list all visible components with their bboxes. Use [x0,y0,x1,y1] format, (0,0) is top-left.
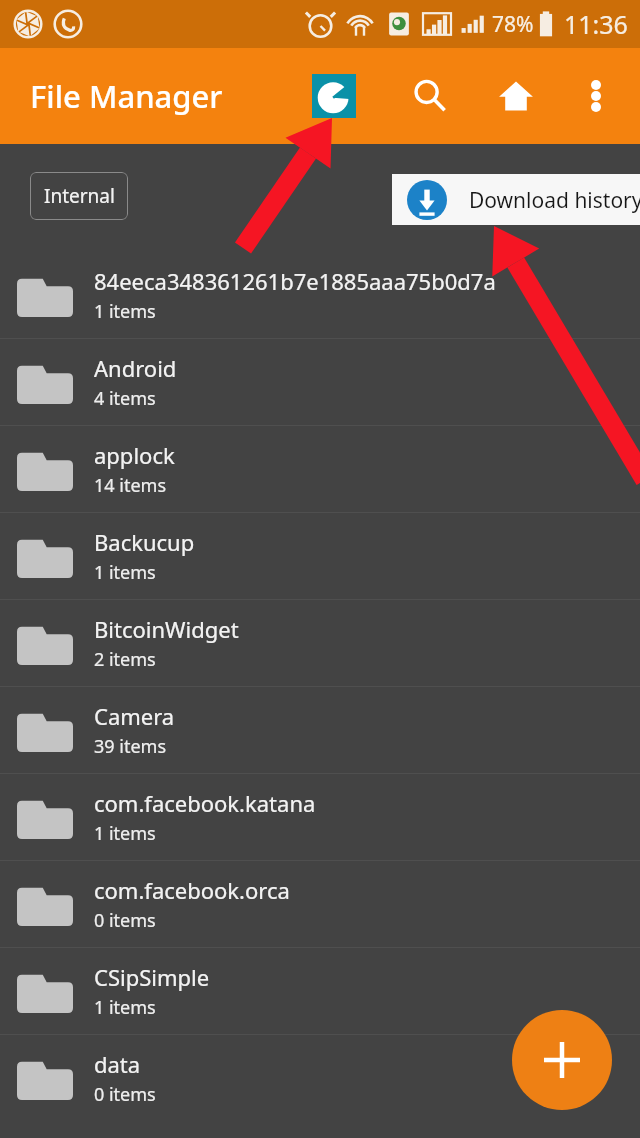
staticText: 4 items [94,386,156,411]
staticText: 39 items [94,734,167,759]
staticText: CSipSimple [94,962,210,992]
button[interactable]: com.facebook.orca [0,861,640,947]
staticText: 1 items [94,299,156,324]
button[interactable]: Backucup [0,513,640,599]
staticText: 0 items [94,1082,156,1107]
staticText: Internal [44,183,115,209]
button[interactable]: Storage analysis [304,66,364,126]
staticText: 0 items [94,908,156,933]
button[interactable]: Android [0,339,640,425]
button[interactable]: Internal [30,172,128,220]
button[interactable]: 84eeca348361261b7e1885aaa75b0d7a [0,252,640,338]
button[interactable]: applock [0,426,640,512]
staticText: data [94,1049,141,1079]
button[interactable]: Add [512,1010,612,1110]
staticText: File Manager [30,75,223,117]
staticText: 84eeca348361261b7e1885aaa75b0d7a [94,266,496,296]
staticText: 1 items [94,995,156,1020]
staticText: 78% [492,10,534,39]
button[interactable]: Download history [392,174,640,225]
button[interactable]: Home [488,68,544,124]
staticText: BitcoinWidget [94,614,239,644]
staticText: 2 items [94,647,156,672]
staticText: Backucup [94,527,195,557]
staticText: Android [94,353,177,383]
staticText: 14 items [94,473,167,498]
button[interactable]: com.facebook.katana [0,774,640,860]
button[interactable]: CSipSimple [0,948,640,1034]
staticText: applock [94,440,175,470]
button[interactable]: Search [402,68,458,124]
button[interactable]: data [0,1035,640,1121]
staticText: 1 items [94,560,156,585]
staticText: 1 items [94,821,156,846]
button[interactable]: More options [570,70,622,122]
button[interactable]: Camera [0,687,640,773]
staticText: com.facebook.orca [94,875,290,905]
staticText: com.facebook.katana [94,788,316,818]
staticText: Camera [94,701,175,731]
staticText: Download history [469,186,640,215]
staticText: 11:36 [564,7,628,41]
button[interactable]: BitcoinWidget [0,600,640,686]
